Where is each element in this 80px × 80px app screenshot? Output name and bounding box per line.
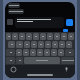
button[interactable] xyxy=(44,49,50,56)
button[interactable]: Symbols xyxy=(6,57,15,64)
button[interactable] xyxy=(33,33,39,40)
button[interactable]: Microphone xyxy=(64,67,69,72)
button[interactable]: Return xyxy=(61,57,74,64)
button[interactable] xyxy=(45,41,51,48)
button[interactable]: Backspace xyxy=(65,49,74,56)
button[interactable] xyxy=(23,49,29,56)
button[interactable] xyxy=(61,33,67,40)
button[interactable] xyxy=(40,33,46,40)
button[interactable]: Attach xyxy=(7,19,13,25)
button[interactable] xyxy=(38,41,44,48)
button[interactable] xyxy=(8,9,24,14)
button[interactable]: Suggestion xyxy=(63,29,68,32)
button[interactable] xyxy=(16,41,23,48)
button[interactable] xyxy=(15,17,64,28)
button[interactable] xyxy=(52,41,58,48)
button[interactable] xyxy=(68,33,74,40)
button[interactable] xyxy=(8,41,15,48)
button[interactable] xyxy=(37,49,43,56)
button[interactable] xyxy=(66,41,72,48)
button[interactable] xyxy=(58,49,64,56)
button[interactable] xyxy=(19,33,25,40)
button[interactable]: Send xyxy=(66,19,73,26)
button[interactable] xyxy=(6,33,11,40)
button[interactable] xyxy=(54,33,60,40)
button[interactable]: Shift xyxy=(6,49,15,56)
button[interactable] xyxy=(59,41,65,48)
button[interactable] xyxy=(31,41,37,48)
button[interactable] xyxy=(16,49,22,56)
button[interactable]: Emoji xyxy=(11,67,16,72)
button[interactable] xyxy=(30,49,36,56)
button[interactable] xyxy=(26,33,32,40)
button[interactable]: Space xyxy=(24,57,60,64)
button[interactable] xyxy=(51,49,57,56)
button[interactable] xyxy=(24,41,30,48)
button[interactable] xyxy=(12,33,18,40)
button[interactable] xyxy=(8,3,20,8)
button[interactable] xyxy=(47,33,53,40)
button[interactable]: Emoji xyxy=(16,57,23,64)
